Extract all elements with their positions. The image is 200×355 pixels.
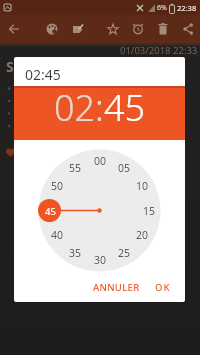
button[interactable]: 05 <box>113 161 135 175</box>
staticText: ANNULER <box>93 281 140 294</box>
button[interactable]: 02:45 <box>14 86 185 140</box>
button[interactable]: 50 <box>46 179 68 193</box>
staticText: 45 <box>45 205 56 218</box>
button[interactable]: 30 <box>89 253 111 267</box>
staticText: 20 <box>136 228 149 242</box>
button[interactable]: 55 <box>64 161 86 175</box>
button[interactable] <box>177 18 199 40</box>
button[interactable]: 20 <box>131 228 153 242</box>
button[interactable]: OK <box>149 275 177 300</box>
staticText: 50 <box>51 179 64 193</box>
staticText: 10 <box>136 179 149 193</box>
staticText: 01/03/2018 22:33 <box>120 44 198 57</box>
staticText: 35 <box>69 246 82 260</box>
staticText: 05 <box>118 161 131 175</box>
staticText: 02:45 <box>25 65 61 84</box>
button[interactable] <box>0 15 28 43</box>
staticText: 25 <box>118 246 131 260</box>
staticText: OK <box>155 281 171 294</box>
button[interactable] <box>67 18 89 40</box>
staticText: S <box>6 57 14 76</box>
staticText: 30 <box>94 253 107 267</box>
button[interactable]: 35 <box>64 246 86 260</box>
staticText: 15 <box>143 204 156 218</box>
button[interactable]: 40 <box>46 228 68 242</box>
staticText: 22:38 <box>177 3 197 13</box>
button[interactable]: 00 <box>89 154 111 168</box>
button[interactable]: 45 <box>39 204 61 218</box>
staticText: 00 <box>94 154 107 168</box>
staticText: 55 <box>69 161 82 175</box>
button[interactable]: 10 <box>131 179 153 193</box>
button[interactable] <box>41 18 63 40</box>
button[interactable] <box>127 18 149 40</box>
staticText: 40 <box>51 228 64 242</box>
staticText: 02:45 <box>54 83 146 132</box>
button[interactable] <box>152 18 174 40</box>
button[interactable]: ANNULER <box>87 275 146 300</box>
button[interactable]: 15 <box>138 204 160 218</box>
button[interactable]: 25 <box>113 246 135 260</box>
button[interactable] <box>102 18 124 40</box>
staticText: 6% <box>157 3 167 13</box>
